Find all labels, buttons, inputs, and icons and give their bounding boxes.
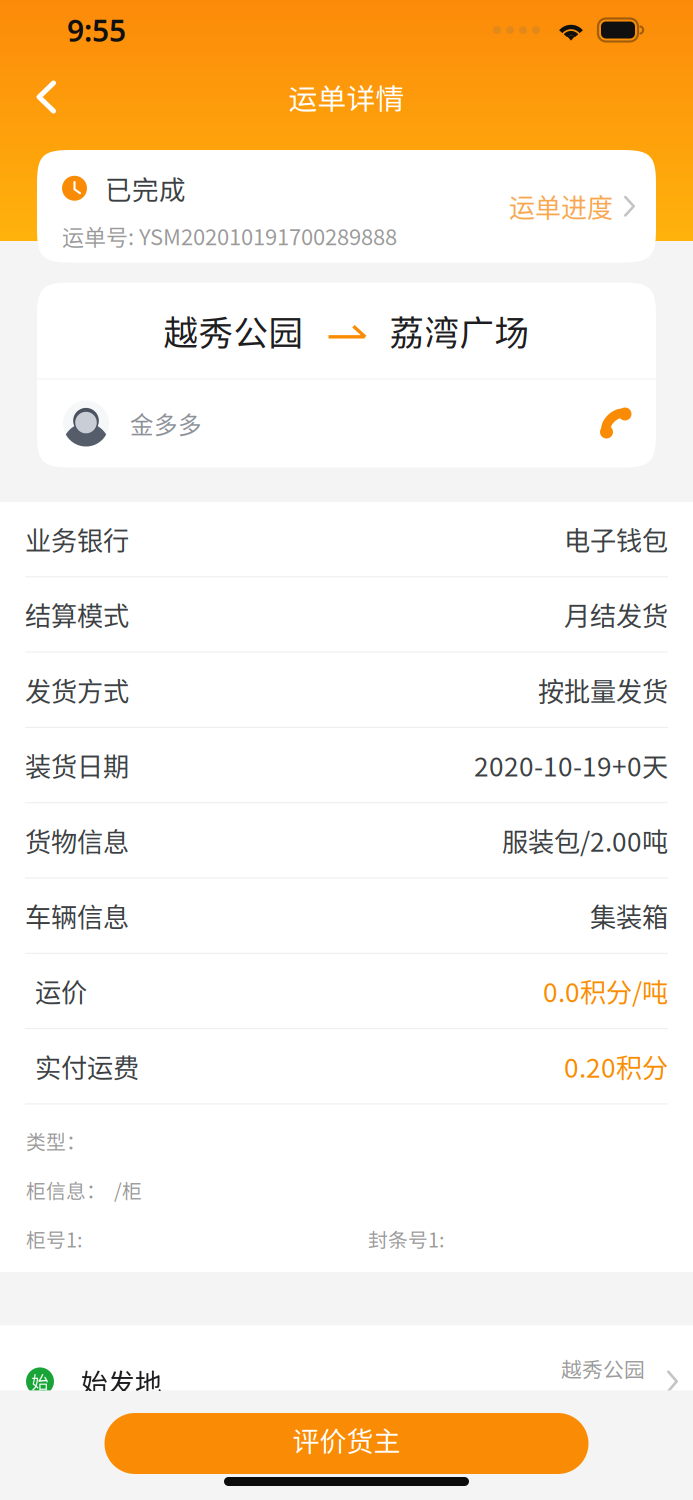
staticText: 运单号: YSM202010191700289888 [62, 220, 397, 252]
staticText: 越秀公园 [561, 1353, 645, 1383]
staticText: 业务银行 [25, 520, 129, 558]
staticText: 金多多 [130, 406, 202, 440]
button[interactable]: 已完成 [37, 150, 656, 262]
staticText: 运价 [35, 972, 87, 1010]
staticText: 按批量发货 [538, 671, 668, 709]
staticText: 月结发货 [564, 595, 668, 633]
staticText: 0.0积分/吨 [543, 972, 668, 1010]
button[interactable]: Call driver [595, 402, 637, 444]
staticText: 服装包/2.00吨 [502, 821, 668, 859]
staticText: 发货方式 [25, 671, 129, 709]
button[interactable]: 始 [0, 1325, 693, 1437]
staticText: 集装箱 [590, 897, 668, 935]
staticText: 实付运费 [35, 1047, 139, 1085]
staticText: 评价货主 [292, 1420, 400, 1460]
staticText: 结算模式 [25, 595, 129, 633]
staticText: 始发地 [81, 1362, 162, 1401]
staticText: 荔湾广场 [389, 305, 529, 355]
staticText: 越秀城 13784599888 [442, 1392, 645, 1423]
staticText: 车辆信息 [25, 897, 129, 935]
staticText: 封条号1: [368, 1225, 445, 1253]
staticText: 装货日期 [25, 746, 129, 784]
staticText: 电子钱包 [564, 520, 668, 558]
staticText: 货物信息 [25, 821, 129, 859]
button[interactable]: 评价货主 [104, 1413, 588, 1474]
staticText: 始 [31, 1369, 48, 1394]
button[interactable]: Back [0, 60, 79, 134]
staticText: 2020-10-19+0天 [474, 746, 668, 784]
staticText: 运单进度 [509, 187, 613, 225]
staticText: 越秀公园 [163, 305, 303, 355]
staticText: 类型： [26, 1127, 86, 1155]
staticText: 运单详情 [288, 76, 404, 118]
staticText: 0.20积分 [564, 1047, 668, 1085]
staticText: 柜信息： /柜 [26, 1176, 142, 1204]
staticText: 已完成 [105, 169, 186, 207]
staticText: 9:55 [67, 10, 126, 50]
staticText: 柜号1: [26, 1225, 83, 1253]
